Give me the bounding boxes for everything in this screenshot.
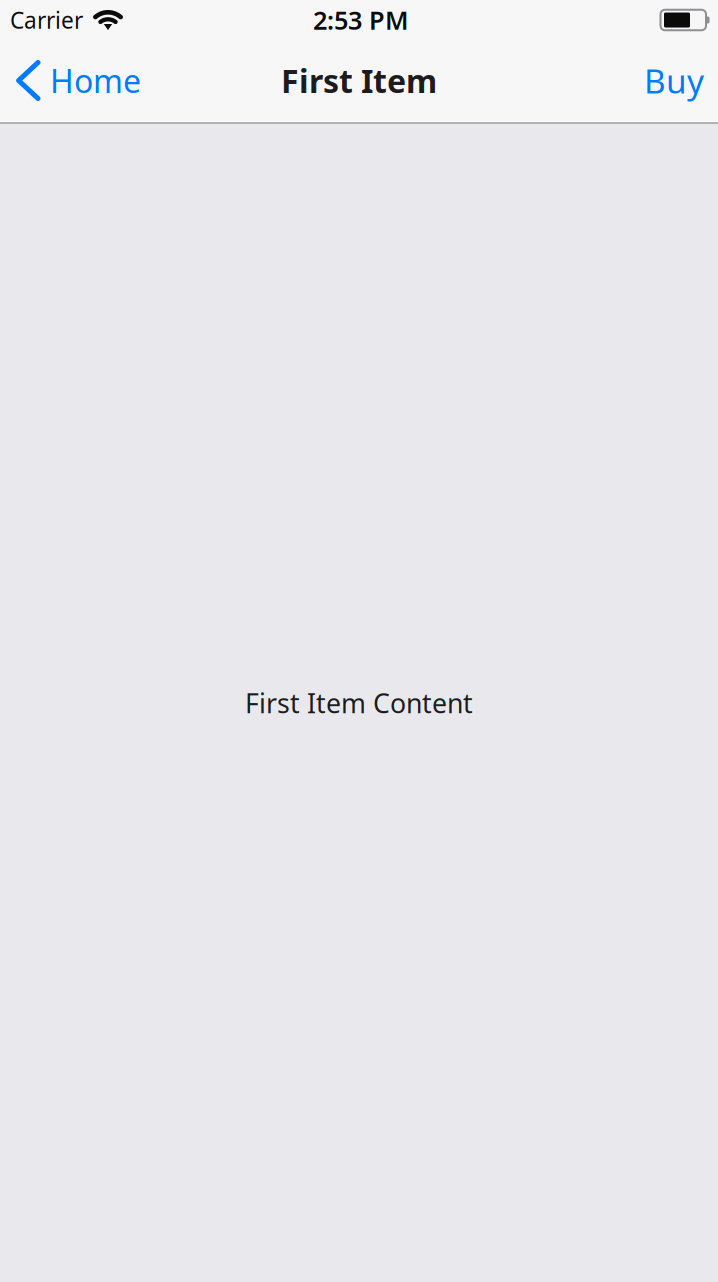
staticText: Carrier: [10, 5, 83, 35]
staticText: First Item: [281, 59, 437, 102]
staticText: Home: [50, 59, 141, 102]
staticText: First Item Content: [245, 685, 473, 721]
staticText: Buy: [644, 58, 704, 103]
staticText: 2:53 PM: [313, 3, 409, 37]
button[interactable]: Back to Home: [0, 40, 151, 121]
button[interactable]: Buy: [630, 40, 718, 121]
